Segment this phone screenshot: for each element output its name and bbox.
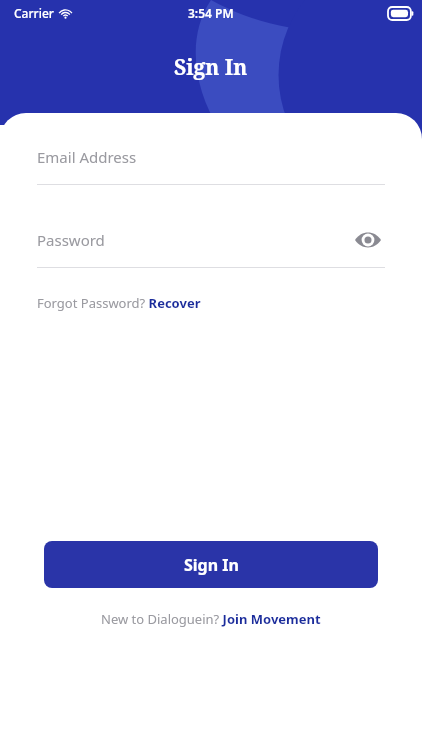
- staticText: Email Address: [37, 147, 137, 167]
- staticText: Carrier: [14, 5, 54, 21]
- staticText: New to Dialoguein? Join Movement: [101, 610, 321, 628]
- staticText: 3:54 PM: [188, 5, 234, 21]
- button[interactable]: Email Address: [37, 147, 385, 185]
- staticText: Sign In: [184, 554, 239, 576]
- staticText: Forgot Password? Recover: [37, 294, 201, 312]
- button[interactable]: Password: [37, 223, 385, 268]
- button[interactable]: New to Dialoguein? Join Movement: [0, 610, 422, 628]
- staticText: Sign In: [174, 53, 248, 82]
- button[interactable]: Show password: [351, 223, 385, 257]
- button[interactable]: Sign In: [44, 541, 378, 588]
- button[interactable]: Forgot Password? Recover: [37, 294, 201, 312]
- staticText: Password: [37, 230, 105, 250]
